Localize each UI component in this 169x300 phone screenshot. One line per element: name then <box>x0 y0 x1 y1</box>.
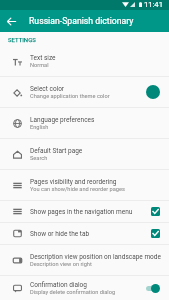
button[interactable]: Toggle setting <box>151 229 160 238</box>
button[interactable]: Show pages in the navigation menu <box>0 201 169 222</box>
staticText: Normal <box>30 62 49 69</box>
staticText: Description view on right <box>30 261 92 268</box>
button[interactable]: Language preferences <box>0 108 169 138</box>
button[interactable]: Toggle confirmation dialog <box>146 283 160 293</box>
button[interactable]: Text size <box>0 46 169 76</box>
staticText: Show or hide the tab <box>30 230 90 238</box>
staticText: Show pages in the navigation menu <box>30 208 133 216</box>
staticText: Default Start page <box>30 147 83 155</box>
button[interactable]: Select color <box>0 77 169 107</box>
staticText: Display delete confirmation dialog <box>30 289 116 296</box>
staticText: SETTINGS <box>8 36 36 43</box>
staticText: Description view position on landscape m… <box>30 253 161 261</box>
button[interactable]: Confirmation dialog <box>0 276 169 300</box>
button[interactable]: Back <box>0 10 22 32</box>
button[interactable]: Theme color <box>146 85 160 99</box>
button[interactable]: Toggle setting <box>151 207 160 216</box>
button[interactable]: Default Start page <box>0 139 169 169</box>
staticText: Pages visibility and reordering <box>30 178 117 186</box>
staticText: Search <box>30 155 48 162</box>
staticText: Text size <box>30 54 56 62</box>
staticText: 11:41 <box>144 0 163 9</box>
staticText: Change application theme color <box>30 93 110 100</box>
button[interactable]: Show or hide the tab <box>0 223 169 244</box>
staticText: Confirmation dialog <box>30 281 87 289</box>
staticText: Russian-Spanish dictionary <box>29 16 134 26</box>
button[interactable]: Pages visibility and reordering <box>0 170 169 200</box>
staticText: English <box>30 124 49 131</box>
button[interactable]: Description view position on landscape m… <box>0 245 169 275</box>
staticText: You can show/hide and reorder pages <box>30 186 125 193</box>
staticText: Language preferences <box>30 116 95 124</box>
staticText: Select color <box>30 85 65 93</box>
